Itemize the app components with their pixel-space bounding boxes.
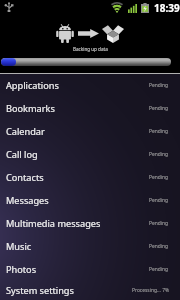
staticText: Pending	[149, 128, 169, 135]
staticText: Messages	[6, 194, 49, 207]
staticText: Bookmarks	[6, 102, 55, 115]
staticText: Processing... 7%	[132, 287, 169, 294]
staticText: Pending	[149, 174, 169, 181]
button[interactable]: Music	[0, 235, 180, 258]
staticText: Pending	[149, 105, 169, 112]
staticText: Contacts	[6, 171, 44, 184]
staticText: Calendar	[6, 125, 45, 138]
staticText: Backing up data	[73, 46, 108, 52]
staticText: Call log	[6, 148, 38, 161]
button[interactable]: Multimedia messages	[0, 212, 180, 235]
staticText: Pending	[149, 82, 169, 89]
staticText: System settings	[6, 284, 74, 297]
staticText: Pending	[149, 197, 169, 204]
button[interactable]: Messages	[0, 189, 180, 212]
staticText: Pending	[149, 266, 169, 273]
button[interactable]: Photos	[0, 258, 180, 281]
staticText: Applications	[6, 79, 59, 92]
button[interactable]: Applications	[0, 74, 180, 97]
staticText: Pending	[149, 243, 169, 250]
button[interactable]: Call log	[0, 143, 180, 166]
staticText: Music	[6, 240, 32, 253]
staticText: 18:39	[154, 1, 180, 15]
staticText: Pending	[149, 220, 169, 227]
staticText: Pending	[149, 151, 169, 158]
button[interactable]: Contacts	[0, 166, 180, 189]
staticText: Photos	[6, 263, 37, 276]
button[interactable]: Calendar	[0, 120, 180, 143]
staticText: Multimedia messages	[6, 217, 101, 230]
button[interactable]: Bookmarks	[0, 97, 180, 120]
button[interactable]: System settings	[0, 281, 180, 300]
